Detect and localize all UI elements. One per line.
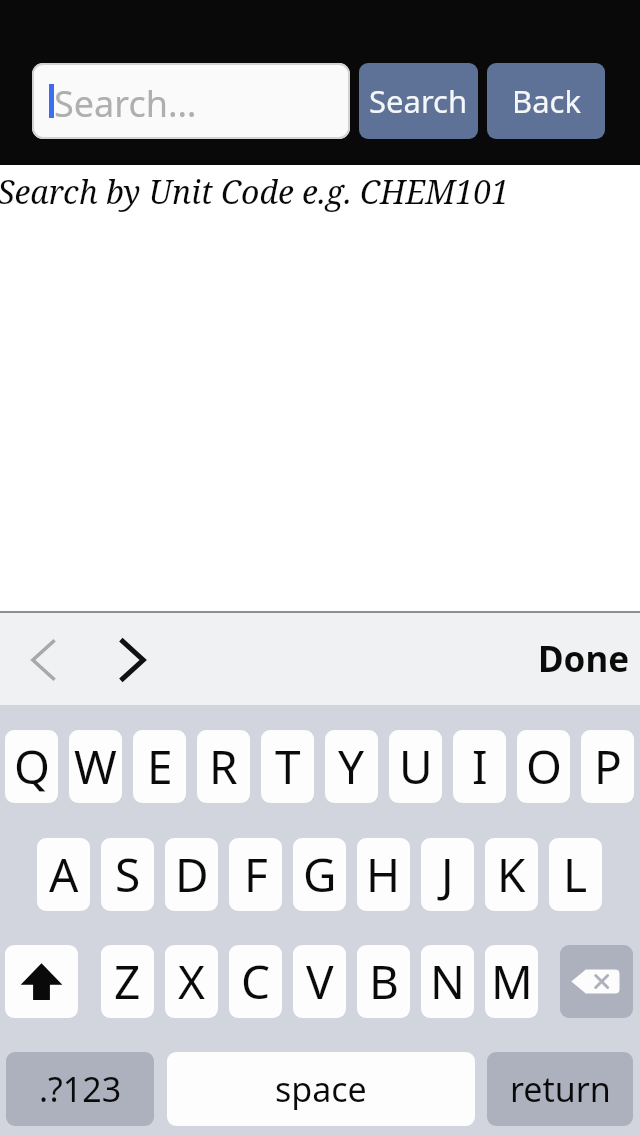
staticText: J bbox=[441, 843, 454, 906]
staticText: return bbox=[510, 1066, 611, 1112]
button[interactable]: G bbox=[293, 838, 346, 911]
staticText: M bbox=[491, 950, 533, 1013]
button[interactable]: Shift bbox=[5, 945, 78, 1018]
button[interactable]: I bbox=[453, 730, 506, 803]
staticText: X bbox=[178, 950, 205, 1013]
staticText: H bbox=[366, 843, 401, 906]
staticText: R bbox=[209, 735, 238, 798]
button[interactable]: return bbox=[487, 1052, 633, 1126]
staticText: K bbox=[497, 843, 526, 906]
button[interactable]: Q bbox=[5, 730, 58, 803]
button[interactable]: Search… bbox=[32, 63, 350, 139]
button[interactable]: M bbox=[485, 945, 538, 1018]
button[interactable]: L bbox=[549, 838, 602, 911]
staticText: Y bbox=[338, 735, 365, 798]
button[interactable]: F bbox=[229, 838, 282, 911]
staticText: G bbox=[303, 843, 337, 906]
staticText: I bbox=[472, 735, 488, 798]
button[interactable]: V bbox=[293, 945, 346, 1018]
button[interactable]: A bbox=[37, 838, 90, 911]
staticText: D bbox=[175, 843, 209, 906]
button[interactable]: Y bbox=[325, 730, 378, 803]
staticText: O bbox=[526, 735, 562, 798]
staticText: Search… bbox=[54, 79, 197, 128]
staticText: E bbox=[147, 735, 173, 798]
staticText: U bbox=[399, 735, 433, 798]
button[interactable]: E bbox=[133, 730, 186, 803]
staticText: Search by Unit Code e.g. CHEM101 bbox=[0, 170, 510, 214]
button[interactable]: T bbox=[261, 730, 314, 803]
staticText: N bbox=[430, 950, 465, 1013]
button[interactable]: Backspace bbox=[560, 945, 633, 1018]
staticText: P bbox=[594, 735, 622, 798]
button[interactable]: W bbox=[69, 730, 122, 803]
staticText: T bbox=[275, 735, 301, 798]
staticText: L bbox=[563, 843, 588, 906]
button[interactable]: U bbox=[389, 730, 442, 803]
staticText: A bbox=[49, 843, 79, 906]
staticText: S bbox=[115, 843, 141, 906]
staticText: Back bbox=[512, 80, 581, 122]
staticText: Done bbox=[538, 635, 630, 683]
button[interactable]: H bbox=[357, 838, 410, 911]
button[interactable]: S bbox=[101, 838, 154, 911]
button[interactable]: D bbox=[165, 838, 218, 911]
button[interactable]: O bbox=[517, 730, 570, 803]
button[interactable]: P bbox=[581, 730, 634, 803]
staticText: Z bbox=[114, 950, 141, 1013]
button[interactable]: Done bbox=[534, 631, 634, 687]
staticText: Q bbox=[14, 735, 50, 798]
button[interactable]: Back bbox=[487, 63, 605, 139]
staticText: B bbox=[369, 950, 399, 1013]
staticText: C bbox=[241, 950, 271, 1013]
staticText: W bbox=[74, 735, 117, 798]
staticText: F bbox=[244, 843, 268, 906]
button[interactable]: space bbox=[167, 1052, 475, 1126]
button[interactable]: Search bbox=[359, 63, 478, 139]
staticText: .?123 bbox=[39, 1066, 122, 1112]
button[interactable]: B bbox=[357, 945, 410, 1018]
button[interactable]: .?123 bbox=[6, 1052, 154, 1126]
staticText: space bbox=[275, 1066, 367, 1112]
button[interactable]: N bbox=[421, 945, 474, 1018]
button[interactable]: J bbox=[421, 838, 474, 911]
staticText: Search bbox=[369, 80, 468, 122]
button[interactable]: Z bbox=[101, 945, 154, 1018]
button[interactable]: R bbox=[197, 730, 250, 803]
button[interactable]: C bbox=[229, 945, 282, 1018]
button[interactable]: X bbox=[165, 945, 218, 1018]
staticText: V bbox=[306, 950, 334, 1013]
button[interactable]: Previous field bbox=[13, 629, 75, 691]
button[interactable]: K bbox=[485, 838, 538, 911]
button[interactable]: Next field bbox=[101, 629, 163, 691]
